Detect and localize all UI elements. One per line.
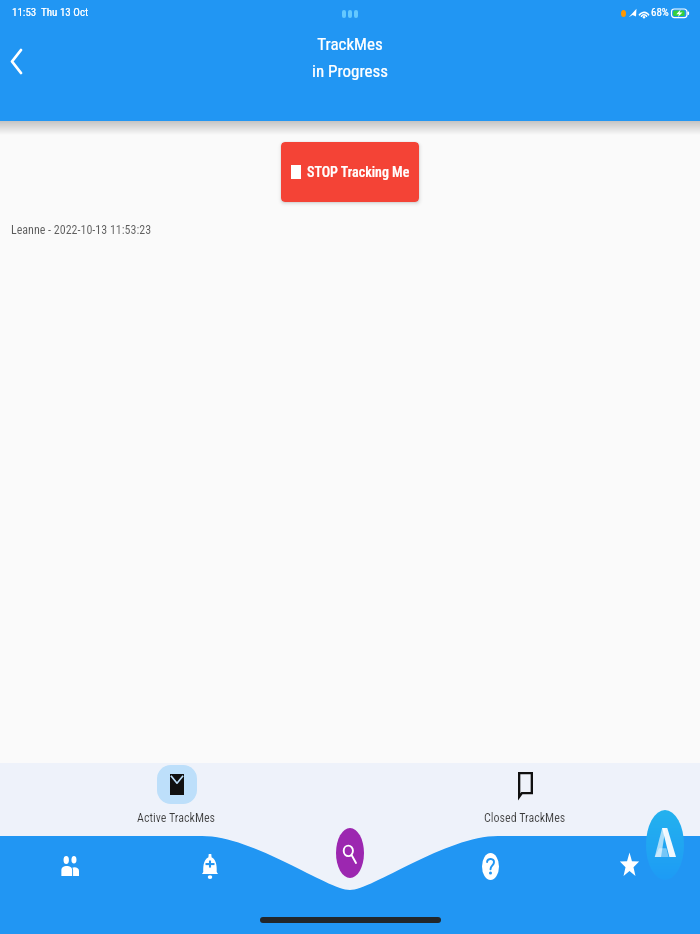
button[interactable]: Closed TrackMes <box>475 765 575 825</box>
staticText: TrackMes <box>317 34 383 54</box>
button[interactable]: Contacts <box>44 840 96 892</box>
staticText: Thu 13 Oct <box>41 6 89 19</box>
staticText: Leanne - 2022-10-13 11:53:23 <box>11 223 152 237</box>
button[interactable]: Active TrackMes <box>126 765 226 825</box>
button[interactable]: App logo <box>646 810 684 880</box>
staticText: Closed TrackMes <box>484 811 566 825</box>
button[interactable]: STOP Tracking Me <box>281 142 419 202</box>
staticText: 11:53 <box>12 6 37 19</box>
staticText: STOP Tracking Me <box>307 164 410 180</box>
button[interactable]: Back <box>0 39 32 83</box>
button[interactable]: Favourites <box>603 840 655 892</box>
staticText: in Progress <box>312 61 388 81</box>
button[interactable]: Search <box>336 828 364 878</box>
staticText: Active TrackMes <box>137 811 216 825</box>
staticText: 68% <box>651 6 669 19</box>
button[interactable]: Alerts <box>184 840 236 892</box>
button[interactable]: Help <box>464 840 516 892</box>
